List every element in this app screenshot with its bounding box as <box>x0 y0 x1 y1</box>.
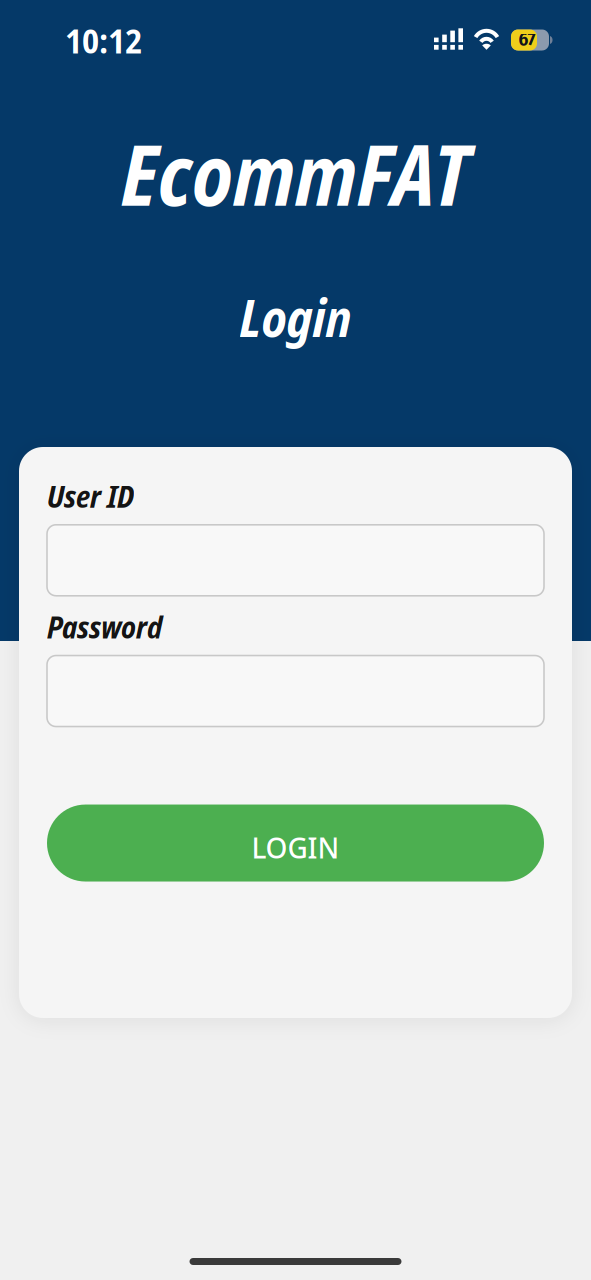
staticText: EcommFAT <box>121 116 470 230</box>
staticText: User ID <box>47 475 134 517</box>
staticText: 67 <box>518 30 535 50</box>
button[interactable]: LOGIN <box>47 804 544 881</box>
button[interactable]: User ID <box>47 525 544 596</box>
staticText: 10:12 <box>65 16 142 64</box>
staticText: Login <box>239 281 351 352</box>
staticText: Password <box>47 606 162 648</box>
staticText: LOGIN <box>251 829 339 866</box>
button[interactable]: Password <box>47 655 544 726</box>
